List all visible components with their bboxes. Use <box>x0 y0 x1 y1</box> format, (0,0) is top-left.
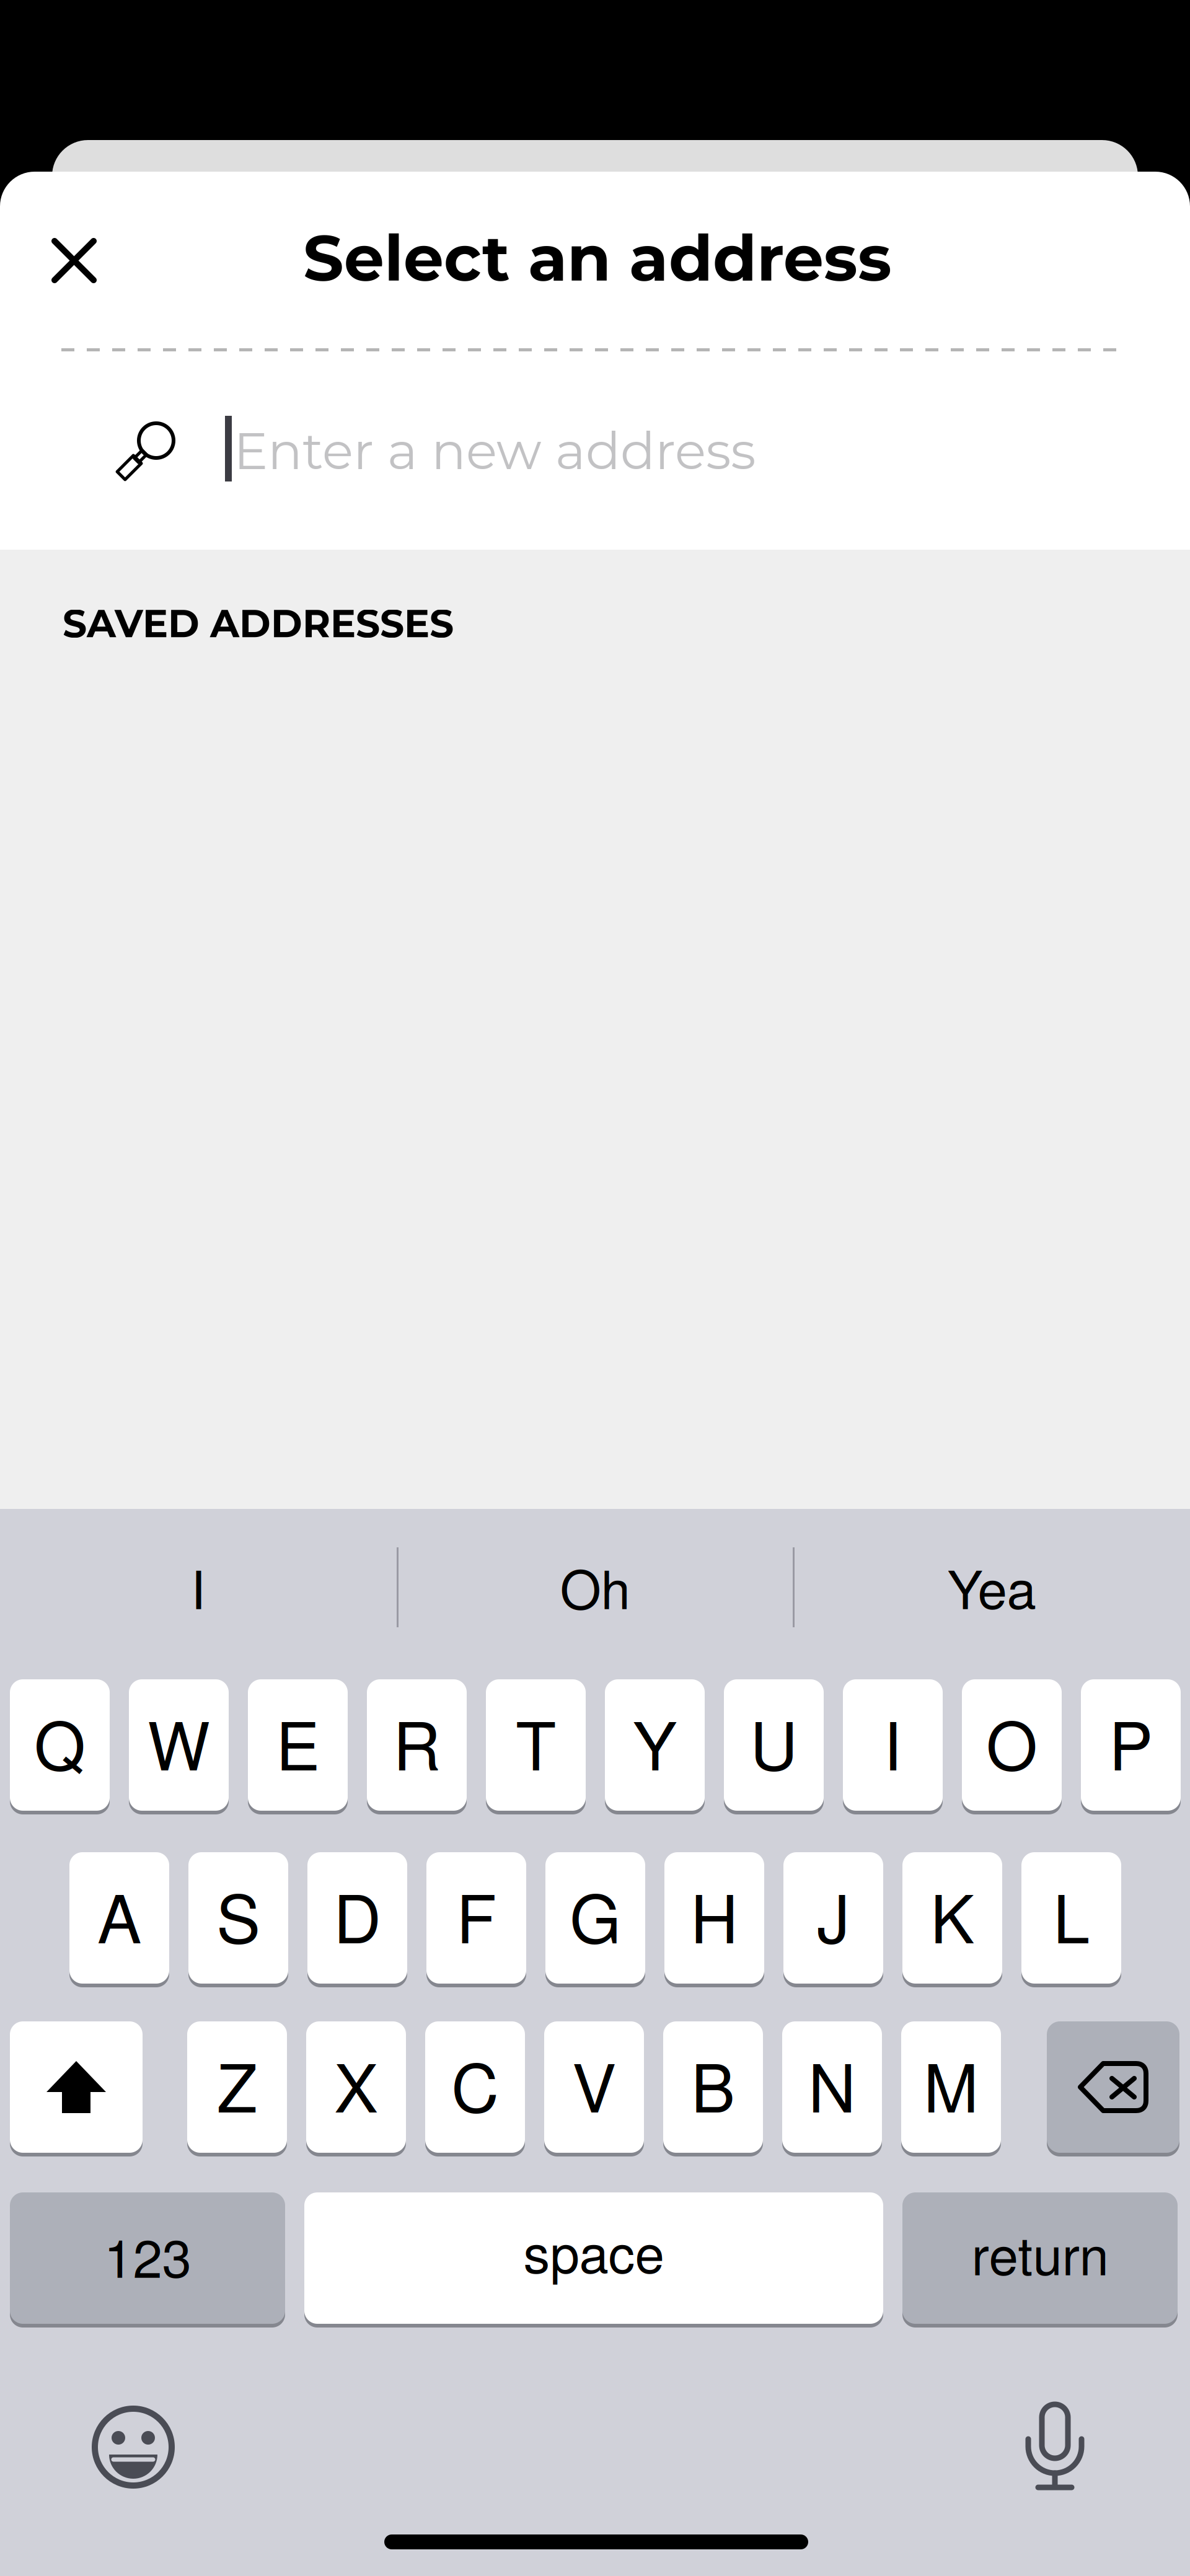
staticText: P <box>1109 1695 1153 1789</box>
button[interactable]: Oh <box>397 1528 793 1645</box>
button[interactable]: F <box>426 1852 526 1984</box>
button[interactable]: Q <box>10 1679 110 1811</box>
button[interactable]: U <box>724 1679 824 1811</box>
button[interactable]: A <box>69 1852 169 1984</box>
staticText: space <box>523 2213 664 2289</box>
button[interactable]: I <box>0 1528 397 1645</box>
button[interactable]: L <box>1021 1852 1121 1984</box>
button[interactable]: W <box>129 1679 229 1811</box>
button[interactable]: return <box>902 2192 1178 2324</box>
button[interactable]: D <box>307 1852 407 1984</box>
staticText: U <box>750 1695 798 1789</box>
staticText: Oh <box>560 1549 630 1624</box>
button[interactable]: Close <box>33 220 115 301</box>
button[interactable]: J <box>783 1852 883 1984</box>
staticText: E <box>276 1695 320 1789</box>
staticText: K <box>930 1867 974 1962</box>
staticText: Y <box>633 1695 677 1789</box>
staticText: S <box>216 1867 260 1962</box>
button[interactable]: Z <box>187 2021 287 2153</box>
button[interactable]: C <box>425 2021 525 2153</box>
button[interactable]: Shift <box>10 2021 143 2153</box>
staticText: I <box>884 1695 902 1789</box>
button[interactable]: B <box>663 2021 763 2153</box>
staticText: I <box>191 1549 206 1624</box>
staticText: H <box>690 1867 738 1962</box>
staticText: F <box>456 1867 496 1962</box>
staticText: Z <box>217 2037 257 2131</box>
staticText: Q <box>34 1695 86 1789</box>
staticText: L <box>1053 1867 1090 1962</box>
staticText: X <box>334 2037 378 2131</box>
button[interactable]: Dictate <box>1024 2401 1086 2492</box>
staticText: return <box>972 2215 1108 2290</box>
button[interactable]: S <box>188 1852 288 1984</box>
button[interactable]: P <box>1081 1679 1181 1811</box>
button[interactable]: G <box>545 1852 645 1984</box>
staticText: Select an address <box>303 219 892 297</box>
staticText: SAVED ADDRESSES <box>63 600 454 647</box>
staticText: Yea <box>947 1549 1036 1624</box>
button[interactable]: V <box>544 2021 644 2153</box>
staticText: 123 <box>104 2217 191 2293</box>
button[interactable]: 123 <box>10 2192 285 2324</box>
staticText: W <box>148 1695 210 1789</box>
staticText: J <box>817 1867 850 1962</box>
button[interactable]: I <box>843 1679 943 1811</box>
staticText: T <box>516 1695 556 1789</box>
button[interactable]: Yea <box>793 1528 1190 1645</box>
button[interactable]: M <box>901 2021 1001 2153</box>
button[interactable]: H <box>664 1852 764 1984</box>
staticText: R <box>393 1695 441 1789</box>
button[interactable]: K <box>902 1852 1002 1984</box>
button[interactable]: E <box>248 1679 348 1811</box>
button[interactable]: N <box>782 2021 882 2153</box>
button[interactable]: X <box>306 2021 406 2153</box>
staticText: N <box>808 2037 856 2131</box>
staticText: C <box>451 2037 499 2131</box>
staticText: M <box>923 2037 979 2131</box>
staticText: Enter a new address <box>234 420 756 482</box>
staticText: G <box>570 1867 621 1962</box>
staticText: V <box>572 2037 616 2131</box>
button[interactable]: Emoji <box>91 2405 175 2489</box>
button[interactable]: R <box>367 1679 467 1811</box>
button[interactable]: Delete <box>1047 2021 1179 2153</box>
staticText: B <box>691 2037 735 2131</box>
button[interactable]: T <box>486 1679 586 1811</box>
staticText: A <box>97 1867 141 1962</box>
button[interactable]: O <box>962 1679 1062 1811</box>
button[interactable]: Y <box>605 1679 705 1811</box>
button[interactable]: space <box>304 2192 883 2324</box>
staticText: O <box>986 1695 1038 1789</box>
staticText: D <box>333 1867 381 1962</box>
